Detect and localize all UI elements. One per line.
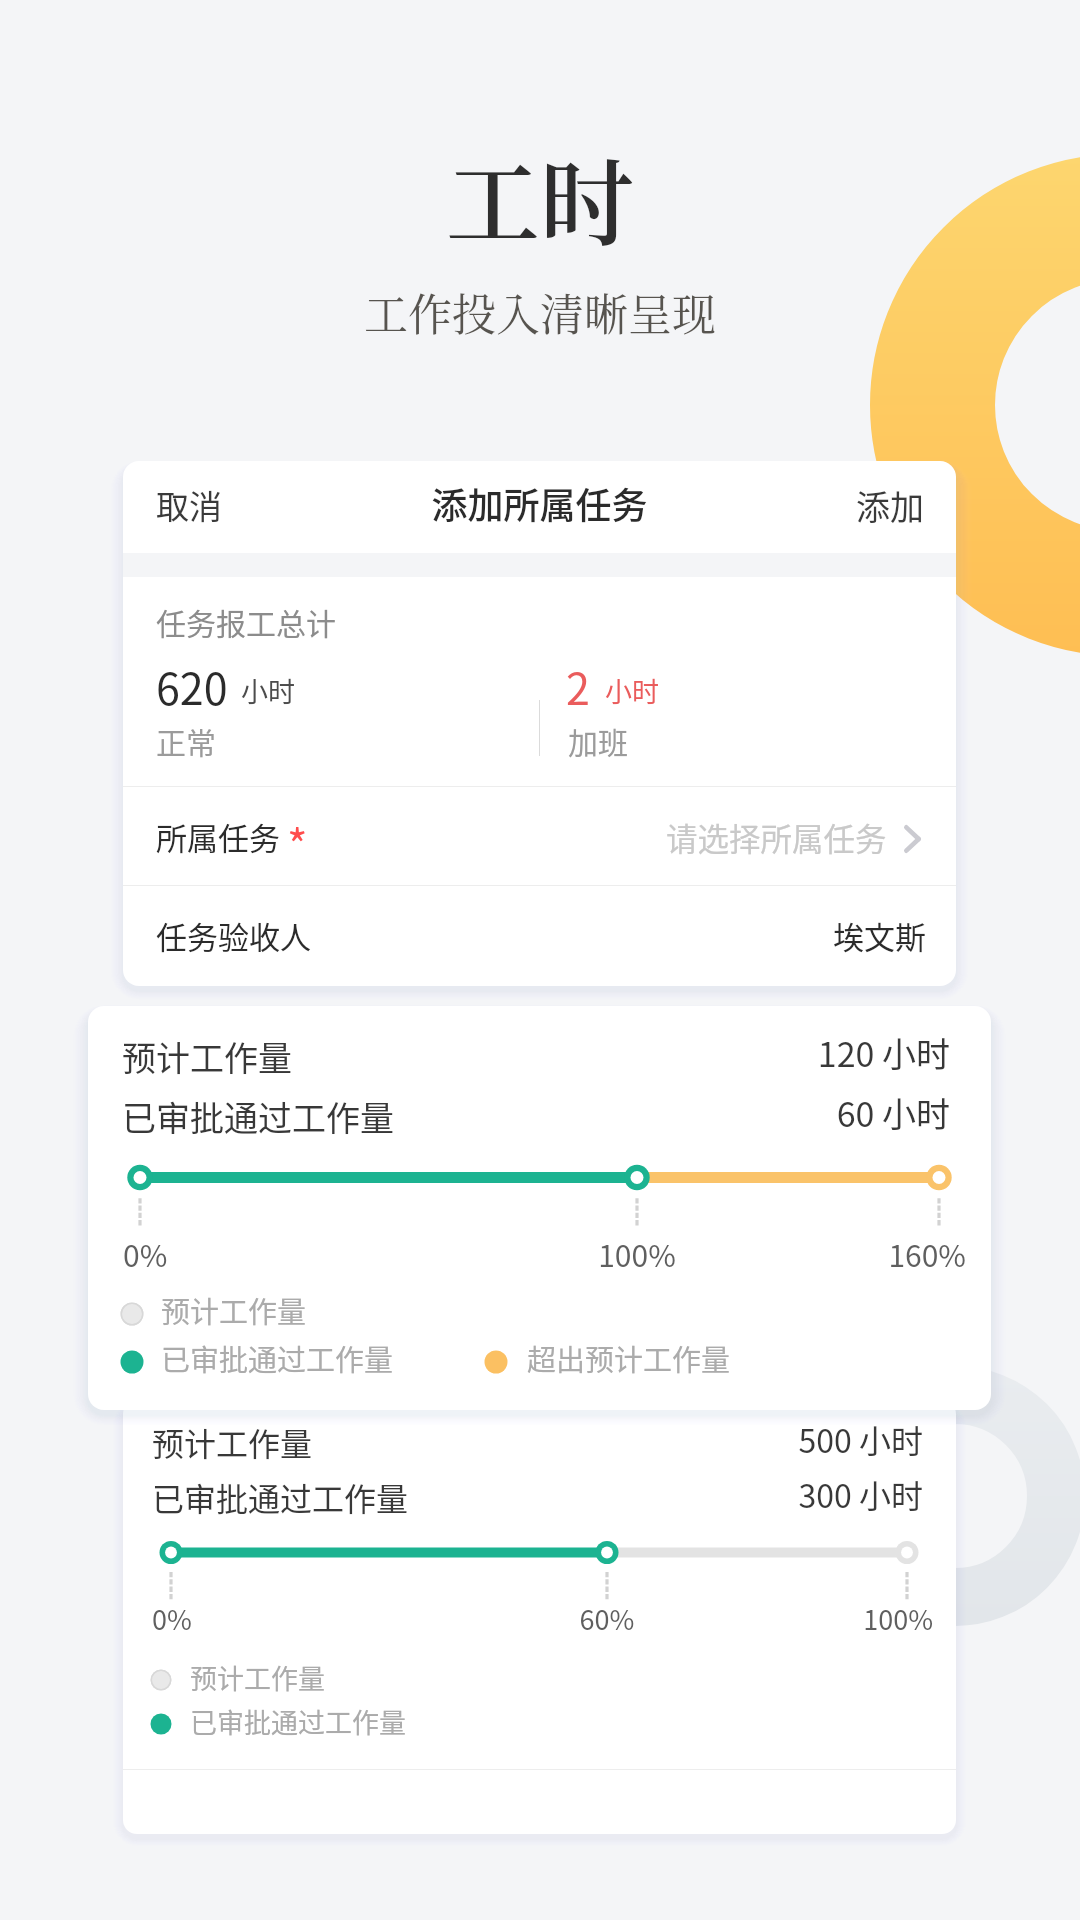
- staticText: 小时: [241, 671, 295, 710]
- staticText: 620: [156, 655, 228, 717]
- button[interactable]: 任务验收人: [123, 886, 956, 986]
- staticText: 已审批通过工作量: [122, 1092, 394, 1141]
- staticText: 已审批通过工作量: [152, 1474, 409, 1520]
- staticText: 任务验收人: [156, 913, 311, 958]
- staticText: 加班: [568, 719, 628, 762]
- staticText: 取消: [156, 481, 222, 529]
- staticText: 预计工作量: [122, 1032, 292, 1081]
- staticText: 500 小时: [503, 1416, 923, 1462]
- staticText: 60%: [507, 1599, 707, 1638]
- staticText: 预计工作量: [190, 1658, 325, 1697]
- staticText: 160%: [766, 1232, 966, 1275]
- staticText: 任务报工总计: [156, 600, 336, 643]
- staticText: 2: [566, 655, 590, 717]
- staticText: 300 小时: [503, 1471, 923, 1517]
- staticText: *: [287, 811, 308, 875]
- staticText: 60 小时: [530, 1088, 950, 1137]
- staticText: 100%: [537, 1232, 737, 1275]
- button[interactable]: 所属任务 请选择所属任务: [123, 787, 956, 885]
- staticText: 添加所属任务: [123, 477, 956, 529]
- staticText: 工时: [0, 130, 1080, 265]
- staticText: 超出预计工作量: [527, 1337, 731, 1379]
- staticText: 0%: [152, 1599, 192, 1638]
- staticText: 已审批通过工作量: [161, 1337, 394, 1379]
- staticText: 所属任务: [156, 814, 280, 859]
- staticText: 0%: [123, 1232, 168, 1275]
- staticText: 预计工作量: [161, 1289, 307, 1331]
- staticText: 预计工作量: [152, 1419, 313, 1465]
- staticText: 埃文斯: [833, 913, 926, 958]
- staticText: 工作投入清晰呈现: [0, 280, 1080, 343]
- staticText: 100%: [733, 1599, 933, 1638]
- staticText: 正常: [156, 719, 216, 762]
- staticText: 请选择所属任务: [666, 814, 887, 860]
- staticText: 小时: [605, 671, 659, 710]
- staticText: 120 小时: [530, 1028, 950, 1077]
- staticText: 添加: [856, 481, 924, 530]
- button[interactable]: 添加: [819, 477, 937, 537]
- button[interactable]: 取消: [141, 477, 259, 537]
- staticText: 已审批通过工作量: [190, 1702, 406, 1741]
